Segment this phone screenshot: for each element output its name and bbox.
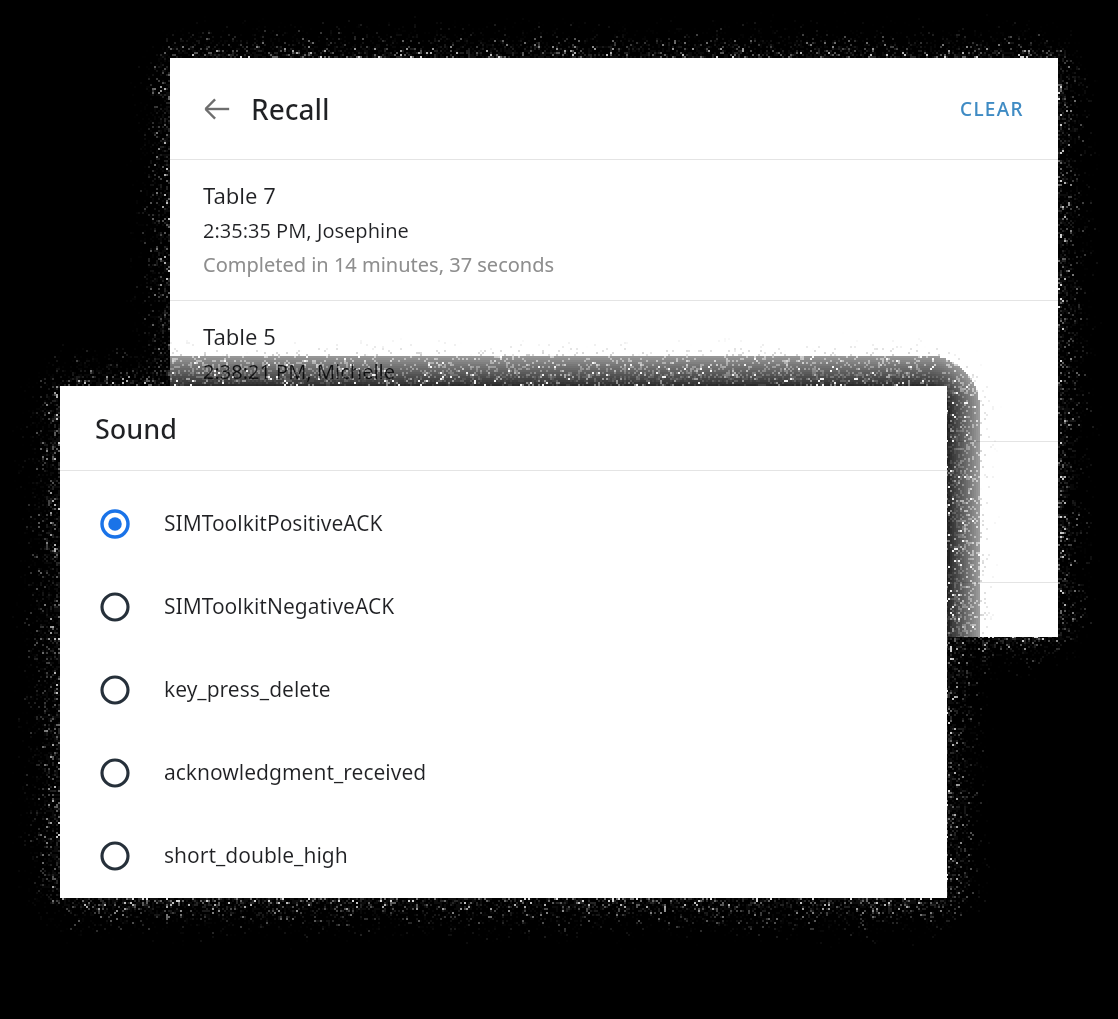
staticText: Table 5 [203, 321, 276, 351]
staticText: 2:38:21 PM, Michelle [203, 358, 396, 385]
staticText: Table 3 [203, 462, 276, 492]
staticText: Table 8 [203, 603, 276, 615]
staticText: Recall [251, 90, 330, 128]
staticText: CLEAR [960, 96, 1024, 122]
staticText: SIMToolkitNegativeACK [164, 592, 395, 621]
staticText: 2:35:35 PM, Josephine [203, 217, 409, 244]
button[interactable]: Table 3 [170, 442, 1058, 582]
button[interactable]: Back [193, 85, 241, 133]
staticText: Table 7 [203, 180, 276, 210]
button[interactable]: Table 5 [170, 301, 1058, 441]
button[interactable]: CLEAR [948, 86, 1036, 132]
staticText: key_press_delete [164, 675, 331, 704]
staticText: Sound [95, 410, 177, 447]
button[interactable]: Table 7 [170, 160, 1058, 300]
button[interactable]: acknowledgment_received [60, 731, 947, 814]
staticText: acknowledgment_received [164, 758, 427, 787]
staticText: SIMToolkitPositiveACK [164, 509, 383, 538]
staticText: short_double_high [164, 841, 348, 870]
button[interactable]: key_press_delete [60, 648, 947, 731]
staticText: Completed in 14 minutes, 37 seconds [203, 251, 555, 278]
staticText: 2:41:02 PM, Andrew [203, 499, 389, 526]
button[interactable]: SIMToolkitPositiveACK [60, 482, 947, 565]
button[interactable]: Table 8 [170, 583, 1058, 637]
button[interactable]: SIMToolkitNegativeACK [60, 565, 947, 648]
button[interactable]: short_double_high [60, 814, 947, 897]
